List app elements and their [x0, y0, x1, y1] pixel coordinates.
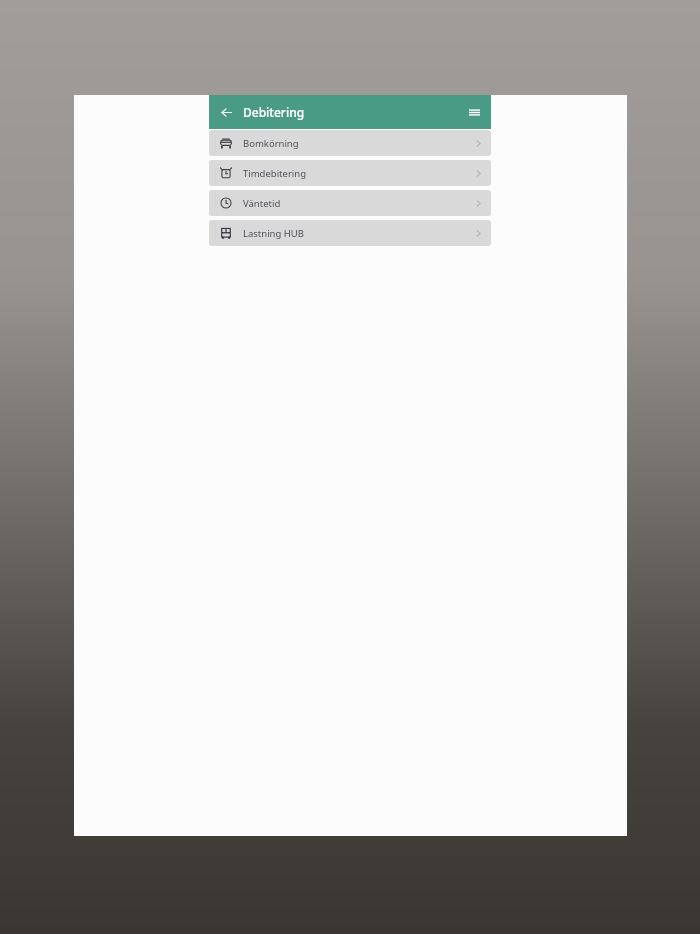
button[interactable]: Timdebitering	[209, 160, 491, 186]
staticText: Debitering	[243, 104, 305, 120]
button[interactable]: Back	[209, 95, 243, 129]
staticText: Lastning HUB	[243, 227, 304, 240]
button[interactable]: Bomkörning	[209, 130, 491, 156]
button[interactable]: Lastning HUB	[209, 220, 491, 246]
staticText: Väntetid	[243, 197, 281, 210]
staticText: Timdebitering	[243, 167, 306, 180]
button[interactable]: Menu	[457, 95, 491, 129]
staticText: Bomkörning	[243, 137, 299, 150]
button[interactable]: Väntetid	[209, 190, 491, 216]
